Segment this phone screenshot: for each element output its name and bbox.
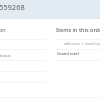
staticText: Items in this order	[56, 26, 100, 33]
button[interactable]: 559268	[0, 0, 100, 18]
staticText: 559268	[0, 2, 25, 12]
staticText: Status	[0, 53, 11, 58]
staticText: Grand total	[57, 51, 79, 56]
staticText: on	[0, 26, 6, 33]
staticText: add more 1 month ago	[64, 41, 100, 46]
